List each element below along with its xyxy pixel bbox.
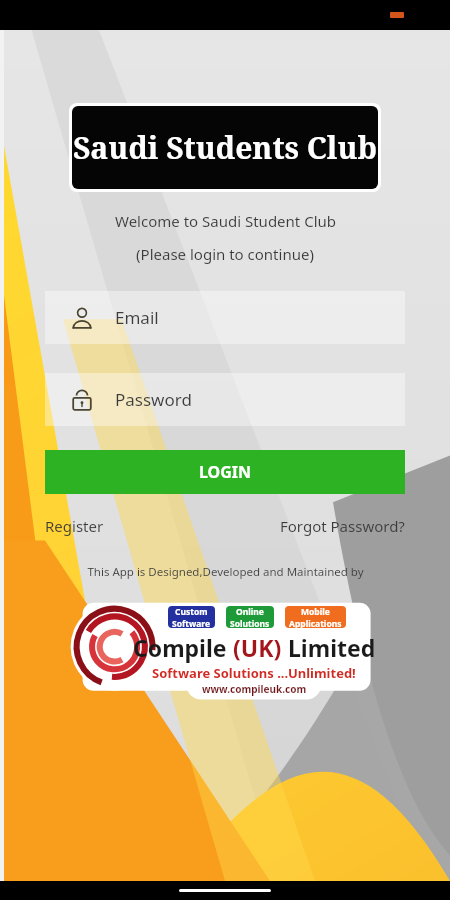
button[interactable]: Forgot Password? bbox=[280, 516, 405, 536]
staticText: Forgot Password? bbox=[280, 516, 405, 536]
staticText: www.compileuk.com bbox=[202, 682, 307, 696]
staticText: Email bbox=[115, 306, 159, 329]
button[interactable]: Password bbox=[45, 373, 405, 426]
staticText: Software Solutions ...Unlimited! bbox=[152, 664, 356, 682]
staticText: Compile bbox=[133, 632, 233, 663]
button[interactable]: LOGIN bbox=[45, 450, 405, 494]
staticText: Custom bbox=[175, 606, 208, 618]
staticText: Mobile bbox=[301, 606, 330, 618]
staticText: This App is Designed,Developed and Maint… bbox=[87, 564, 364, 580]
button[interactable]: Register bbox=[45, 516, 104, 536]
staticText: Online bbox=[236, 606, 264, 618]
staticText: (Please login to continue) bbox=[136, 244, 314, 264]
staticText: Password bbox=[115, 388, 192, 411]
staticText: Applications bbox=[289, 618, 342, 628]
staticText: Limited bbox=[282, 632, 376, 663]
staticText: Saudi Students Club bbox=[73, 127, 377, 168]
staticText: (UK) bbox=[233, 632, 282, 663]
button[interactable]: Saudi Students Club bbox=[72, 106, 378, 189]
staticText: Welcome to Saudi Student Club bbox=[115, 211, 336, 231]
staticText: Register bbox=[45, 516, 104, 536]
staticText: LOGIN bbox=[199, 461, 252, 483]
button[interactable]: Email bbox=[45, 291, 405, 344]
staticText: Solutions bbox=[230, 618, 270, 628]
staticText: Software bbox=[172, 618, 211, 628]
